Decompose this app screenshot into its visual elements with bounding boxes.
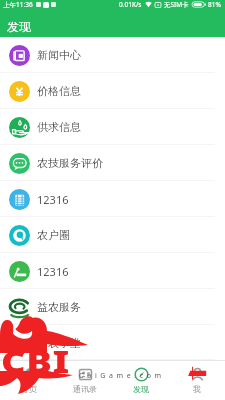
- button[interactable]: 发现: [113, 367, 169, 394]
- staticText: 81%: [208, 0, 221, 9]
- button[interactable]: 益农服务: [0, 289, 225, 325]
- staticText: CBI: [1, 341, 71, 382]
- button[interactable]: 12316: [0, 253, 225, 289]
- staticText: 12316: [37, 192, 69, 207]
- staticText: 发现: [7, 19, 31, 34]
- staticText: 新农学堂: [37, 336, 81, 350]
- button[interactable]: 农技服务评价: [0, 145, 225, 181]
- button[interactable]: 我: [169, 367, 225, 394]
- staticText: 上午11:36: [3, 0, 33, 9]
- staticText: 农户圈: [37, 228, 70, 242]
- staticText: 首页: [21, 384, 37, 394]
- staticText: CbiGame.com: [79, 371, 165, 381]
- staticText: 发现: [133, 384, 149, 394]
- button[interactable]: 新农学堂: [0, 325, 225, 360]
- staticText: 供求信息: [37, 120, 81, 134]
- staticText: 农技服务评价: [37, 156, 103, 170]
- staticText: 价格信息: [37, 84, 81, 98]
- button[interactable]: 12316: [0, 181, 225, 217]
- staticText: 12316: [37, 264, 69, 279]
- button[interactable]: 价格信息: [0, 73, 225, 109]
- staticText: 0.01K/s: [119, 0, 142, 9]
- button[interactable]: 通讯录: [57, 367, 113, 394]
- staticText: 我: [193, 384, 201, 394]
- button[interactable]: 供求信息: [0, 109, 225, 145]
- staticText: 益农服务: [37, 300, 81, 314]
- staticText: 无SIM卡: [164, 0, 189, 9]
- staticText: 新闻中心: [37, 48, 81, 62]
- button[interactable]: 新闻中心: [0, 37, 225, 73]
- button[interactable]: 首页: [0, 367, 57, 394]
- staticText: 通讯录: [73, 384, 97, 394]
- button[interactable]: 农户圈: [0, 217, 225, 253]
